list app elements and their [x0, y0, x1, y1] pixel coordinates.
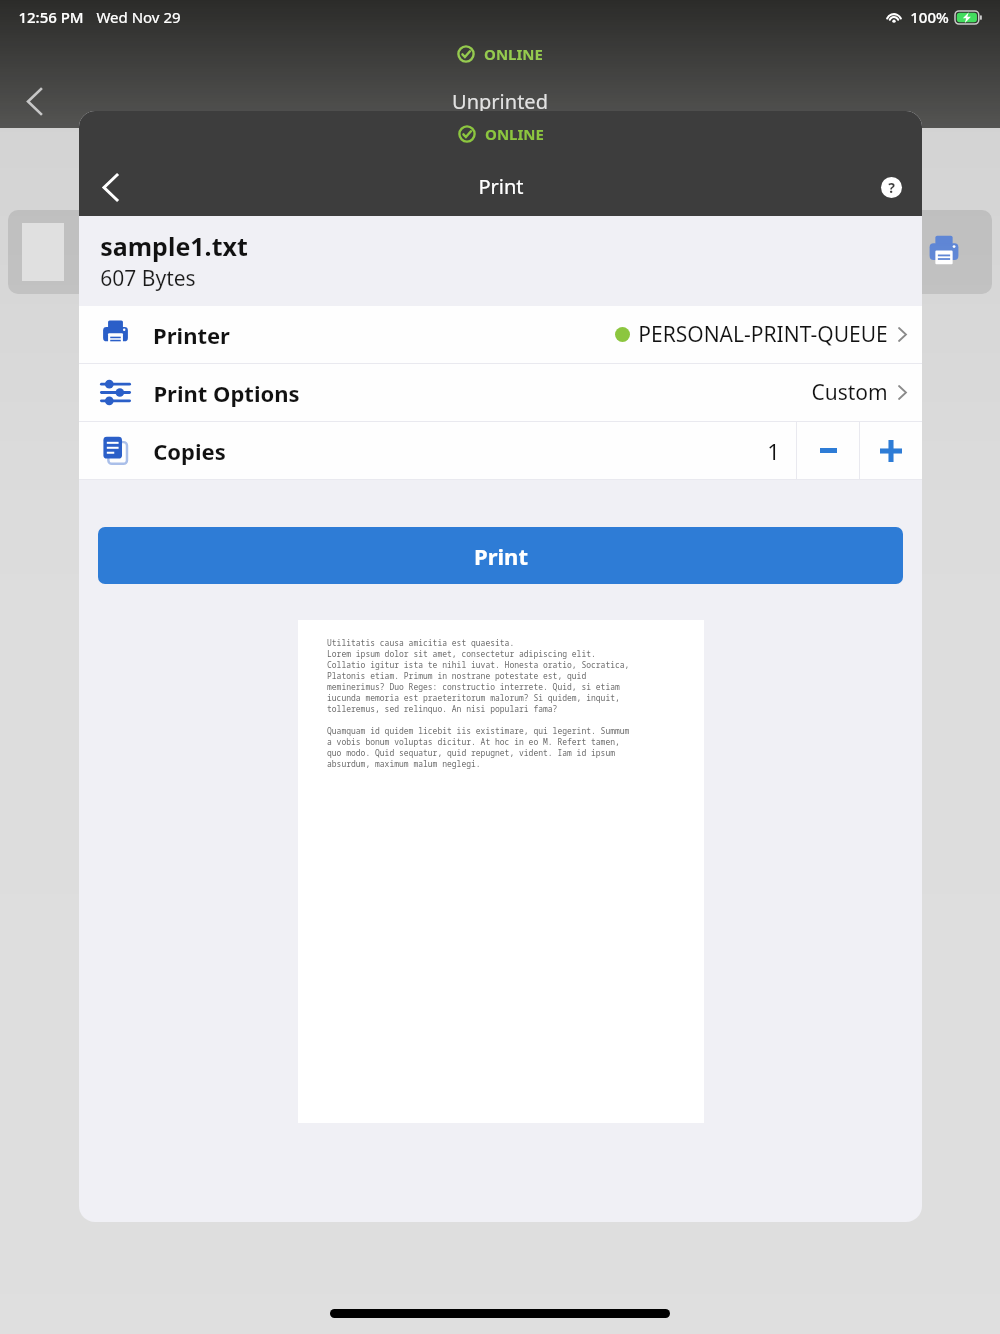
button[interactable]: Printer: [79, 306, 922, 363]
staticText: PERSONAL-PRINT-QUEUE: [638, 320, 888, 349]
staticText: Custom: [811, 378, 888, 407]
staticText: quo modo. Quid sequatur, quid repugnet, …: [327, 747, 615, 758]
staticText: ONLINE: [485, 124, 544, 144]
staticText: 607 Bytes: [100, 264, 196, 293]
button[interactable]: Back: [84, 161, 136, 213]
staticText: Collatio igitur ista te nihil iuvat. Hon…: [327, 659, 630, 670]
staticText: Print Options: [153, 378, 300, 408]
button[interactable]: Decrease copies: [797, 422, 859, 479]
staticText: a vobis bonum voluptas dicitur. At hoc i…: [327, 736, 620, 747]
staticText: absurdum, maximum malum neglegi.: [327, 758, 481, 769]
staticText: iucunda memoria est praeteritorum maloru…: [327, 692, 620, 703]
staticText: 100%: [910, 7, 949, 27]
staticText: Wed Nov 29: [96, 7, 181, 27]
button[interactable]: Print Options: [79, 364, 922, 421]
staticText: 1: [767, 436, 780, 466]
button[interactable]: Print: [98, 527, 903, 584]
staticText: Print: [478, 173, 524, 200]
staticText: tolleremus, sed relinquo. An nisi popula…: [327, 703, 558, 714]
staticText: ?: [888, 178, 895, 197]
staticText: meminerimus? Duo Reges: constructio inte…: [327, 681, 620, 692]
button[interactable]: Copies: [79, 422, 796, 479]
staticText: Platonis etiam. Primum in nostrane potes…: [327, 670, 587, 681]
staticText: Unprinted: [452, 88, 548, 115]
staticText: Lorem ipsum dolor sit amet, consectetur …: [327, 648, 596, 659]
staticText: sample1.txt: [100, 229, 248, 263]
button[interactable]: s: [8, 210, 992, 294]
staticText: Print: [474, 541, 528, 571]
staticText: Utilitatis causa amicitia est quaesita.: [327, 637, 515, 648]
staticText: Printer: [153, 320, 230, 350]
button[interactable]: Help: [865, 161, 917, 213]
button[interactable]: Increase copies: [860, 422, 922, 479]
staticText: 12:56 PM: [18, 7, 84, 27]
staticText: ONLINE: [484, 44, 543, 64]
button[interactable]: Back: [10, 77, 58, 125]
staticText: Copies: [153, 436, 226, 466]
staticText: Quamquam id quidem licebit iis existimar…: [327, 725, 630, 736]
